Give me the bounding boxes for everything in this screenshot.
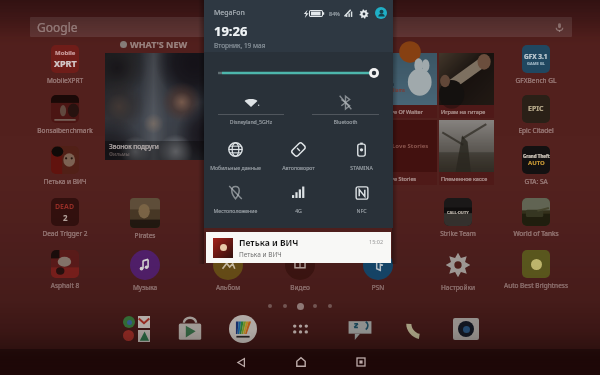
button[interactable]: Grand Theft <box>501 146 571 186</box>
staticText: CALL·DUTY <box>447 210 469 215</box>
staticText: PSN <box>343 283 413 292</box>
staticText: Играм на гитаре <box>441 108 486 115</box>
staticText: GAME GL <box>527 61 545 66</box>
button[interactable]: Bluetooth <box>298 88 393 130</box>
button[interactable]: Настройки <box>423 250 493 292</box>
button[interactable]: Pirates <box>110 198 180 240</box>
staticText: DEAD <box>55 202 75 212</box>
button[interactable]: Mobile <box>30 45 100 85</box>
button[interactable]: Messages <box>341 312 379 346</box>
staticText: GTA: SA <box>501 177 571 186</box>
staticText: Вторник, 19 мая <box>214 41 266 50</box>
staticText: Dead Trigger 2 <box>30 229 100 238</box>
staticText: GFX 3.1 <box>524 52 548 61</box>
staticText: Фильмы <box>109 151 130 158</box>
button[interactable]: All apps <box>281 312 319 346</box>
button[interactable]: Back <box>225 349 257 375</box>
button[interactable]: Bonsaibenchmark <box>30 95 100 135</box>
staticText: WHAT'S NEW <box>130 38 188 50</box>
staticText: Мобильные данные <box>204 164 267 171</box>
staticText: Альбом <box>193 283 263 292</box>
staticText: MobileXPRT <box>30 76 100 85</box>
button[interactable]: Recents <box>345 349 377 375</box>
staticText: 19:26 <box>214 22 248 40</box>
button[interactable]: Phone <box>396 312 434 346</box>
staticText: XPRT <box>54 57 77 69</box>
staticText: Strike Team <box>423 229 493 238</box>
staticText: NFC <box>330 207 393 214</box>
button[interactable]: Camera <box>447 312 485 346</box>
staticText: AUTO <box>528 159 545 167</box>
staticText: Местоположение <box>204 207 267 214</box>
staticText: Williams <box>386 87 406 93</box>
button[interactable]: Home <box>285 349 317 375</box>
button[interactable]: DEAD <box>30 198 100 238</box>
staticText: Grand Theft <box>523 153 550 159</box>
staticText: Bluetooth <box>298 118 393 125</box>
staticText: STAMINA <box>330 164 393 171</box>
staticText: Mobile <box>55 49 76 57</box>
button[interactable]: Google folder <box>118 312 156 346</box>
button[interactable]: STAMINA <box>330 136 393 176</box>
button[interactable]: Asphalt 8 <box>30 250 100 290</box>
button[interactable]: 4G <box>267 179 330 219</box>
button[interactable]: Settings <box>358 8 369 19</box>
staticText: Lila <box>386 81 394 87</box>
staticText: Петька и ВИЧ <box>239 250 282 259</box>
staticText: Epic Citadel <box>501 126 571 135</box>
button[interactable]: Видео <box>265 250 335 292</box>
staticText: Disneyland_5GHz <box>204 118 298 125</box>
button[interactable]: World of Tanks <box>501 198 571 238</box>
button[interactable]: Мобильные данные <box>204 136 267 176</box>
staticText: Auto Best Brightness <box>501 281 571 290</box>
staticText: Звонок подруги <box>109 142 159 151</box>
staticText: Петька и ВИЧ <box>239 237 299 249</box>
staticText: Asphalt 8 <box>30 281 100 290</box>
button[interactable]: Gallery <box>224 312 262 346</box>
staticText: Петька и ВИЧ <box>30 177 100 186</box>
staticText: 15:02 <box>369 238 384 245</box>
staticText: EPIC <box>528 104 544 114</box>
button[interactable]: EPIC <box>501 95 571 135</box>
button[interactable]: NFC <box>330 179 393 219</box>
button[interactable]: Google <box>30 17 572 37</box>
button[interactable]: CALL·DUTY <box>423 198 493 238</box>
staticText: 84% <box>329 10 340 17</box>
button[interactable]: Альбом <box>193 250 263 292</box>
staticText: Love Stories <box>392 142 429 150</box>
staticText: Google <box>37 19 78 35</box>
staticText: Видео <box>265 283 335 292</box>
button[interactable]: User account <box>375 7 387 19</box>
button[interactable]: PSN <box>343 250 413 292</box>
staticText: Love Of Waiter <box>385 108 423 115</box>
button[interactable]: GFX 3.1 <box>501 45 571 85</box>
button[interactable]: Петька и ВИЧ <box>206 232 391 263</box>
button[interactable]: Auto Best Brightness <box>501 250 571 290</box>
staticText: 2 <box>63 212 68 223</box>
staticText: Love Stories <box>385 175 417 182</box>
staticText: Музыка <box>110 283 180 292</box>
button[interactable]: Музыка <box>110 250 180 292</box>
staticText: Pirates <box>110 231 180 240</box>
staticText: 4G <box>267 207 330 214</box>
staticText: World of Tanks <box>501 229 571 238</box>
button[interactable]: Петька и ВИЧ <box>30 146 100 186</box>
button[interactable]: Местоположение <box>204 179 267 219</box>
button[interactable]: Disneyland_5GHz <box>204 88 298 130</box>
staticText: GFXBench GL <box>501 76 571 85</box>
button[interactable]: Автоповорот <box>267 136 330 176</box>
staticText: Племенное кассе <box>441 175 488 182</box>
staticText: MegaFon <box>214 8 245 18</box>
staticText: Настройки <box>423 283 493 292</box>
staticText: Автоповорот <box>267 164 330 171</box>
button[interactable]: Play Store <box>171 312 209 346</box>
staticText: Bonsaibenchmark <box>30 126 100 135</box>
